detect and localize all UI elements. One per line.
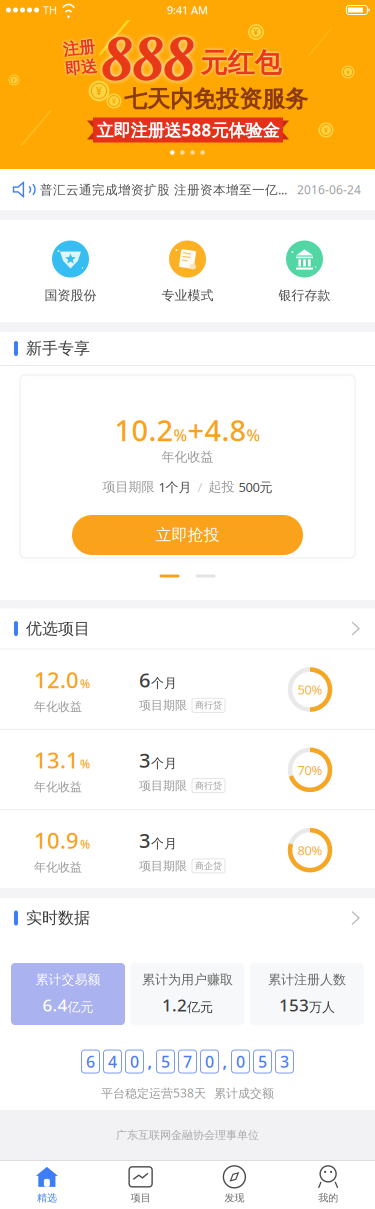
staticText: 亿元	[67, 999, 93, 1015]
staticText: 153	[279, 994, 309, 1016]
staticText: 3	[139, 827, 150, 854]
button[interactable]: 实时数据	[0, 898, 375, 938]
staticText: 个月	[151, 836, 177, 852]
staticText: 项目期限	[102, 479, 158, 495]
staticText: %	[80, 756, 90, 772]
button[interactable]: 专业模式	[129, 240, 246, 303]
staticText: ¥	[253, 27, 258, 37]
staticText: 万人	[309, 999, 335, 1015]
button[interactable]: 国资股份	[12, 240, 129, 303]
staticText: 5	[258, 1051, 267, 1072]
button[interactable]: 精选	[0, 1161, 94, 1209]
staticText: 13.1	[34, 745, 79, 775]
staticText: 0	[236, 1051, 245, 1072]
staticText: 新手专享	[26, 339, 90, 358]
button[interactable]: 普汇云通完成增资扩股 注册资本增至一亿...	[0, 169, 375, 210]
staticText: 立即注册送588元体验金	[96, 119, 279, 141]
staticText: 发现	[224, 1192, 244, 1204]
button[interactable]: 立即抢投	[72, 515, 303, 555]
staticText: 6	[139, 666, 150, 693]
staticText: 七天内免投资服务	[124, 85, 308, 113]
button[interactable]: 立即注册送588元体验金	[87, 116, 289, 143]
staticText: 12.0	[34, 665, 79, 694]
button[interactable]: 优选项目	[0, 608, 375, 648]
staticText: %	[80, 836, 90, 852]
staticText: 商行贷	[195, 700, 222, 711]
staticText: ¥	[96, 84, 102, 98]
staticText: 专业模式	[161, 287, 213, 303]
staticText: 项目期限	[139, 778, 187, 793]
staticText: 3	[280, 1051, 289, 1072]
staticText: 4	[108, 1051, 117, 1072]
staticText: 商行贷	[195, 780, 222, 791]
staticText: 0	[205, 1051, 214, 1072]
staticText: 累计注册人数	[268, 972, 346, 988]
staticText: 注册	[64, 38, 96, 58]
staticText: 50%	[297, 681, 322, 698]
staticText: 个月	[151, 675, 177, 691]
staticText: 500元	[238, 478, 272, 496]
button[interactable]: 我的	[281, 1161, 375, 1209]
button[interactable]: ¥	[0, 20, 375, 169]
staticText: 我的	[318, 1192, 338, 1204]
staticText: 立即抢投	[155, 525, 219, 545]
staticText: 亿元	[187, 999, 213, 1015]
staticText: 元红包	[200, 46, 281, 80]
staticText: 80%	[297, 841, 322, 859]
staticText: 2016-06-24	[297, 181, 361, 197]
staticText: ¥	[324, 125, 328, 135]
staticText: 7	[183, 1051, 192, 1072]
staticText: 6.4	[42, 994, 67, 1016]
staticText: 1个月	[158, 478, 191, 496]
staticText: ,	[147, 1051, 152, 1072]
staticText: 精选	[37, 1192, 57, 1204]
staticText: +4.8	[187, 411, 246, 449]
staticText: ¥	[112, 96, 116, 106]
staticText: 国资股份	[44, 287, 96, 303]
staticText: ¥	[346, 68, 349, 76]
staticText: 平台稳定运营538天 累计成交额	[101, 1085, 274, 1101]
button[interactable]: 13.1	[0, 730, 375, 809]
staticText: 5	[161, 1051, 170, 1072]
staticText: 广东互联网金融协会理事单位	[116, 1128, 259, 1142]
button[interactable]: 10.9	[0, 810, 375, 889]
staticText: 10.9	[34, 826, 79, 855]
staticText: 个月	[151, 755, 177, 771]
staticText: 累计交易额	[35, 972, 100, 988]
staticText: 1.2	[162, 994, 187, 1016]
staticText: %	[80, 676, 90, 691]
staticText: 优选项目	[26, 619, 90, 638]
staticText: 项目期限	[139, 859, 187, 873]
staticText: 9:41 AM	[167, 3, 208, 17]
staticText: 3	[139, 747, 150, 773]
button[interactable]: 项目	[94, 1161, 188, 1209]
staticText: 普汇云通完成增资扩股 注册资本增至一亿...	[40, 181, 287, 198]
staticText: 0	[130, 1051, 139, 1072]
staticText: 项目	[131, 1192, 151, 1204]
button[interactable]: 12.0	[0, 649, 375, 729]
staticText: ,	[222, 1051, 227, 1072]
staticText: 70%	[297, 761, 322, 778]
staticText: 银行存款	[278, 287, 330, 303]
staticText: 年化收益	[34, 699, 82, 714]
staticText: ¥	[12, 77, 15, 83]
staticText: 累计为用户赚取	[142, 972, 233, 988]
staticText: 商企贷	[195, 860, 222, 871]
staticText: %	[173, 424, 187, 446]
staticText: 888	[102, 23, 193, 95]
staticText: 年化收益	[34, 860, 82, 875]
staticText: %	[246, 424, 260, 446]
staticText: 年化收益	[161, 449, 213, 465]
staticText: 起投	[208, 479, 238, 495]
staticText: 年化收益	[34, 780, 82, 794]
staticText: 项目期限	[139, 698, 187, 713]
button[interactable]: 银行存款	[246, 240, 363, 303]
staticText: 6	[86, 1051, 95, 1072]
button[interactable]: 发现	[187, 1161, 281, 1209]
staticText: 10.2	[114, 411, 173, 449]
staticText: 实时数据	[26, 908, 90, 928]
staticText: /	[191, 478, 208, 496]
staticText: TH	[43, 3, 57, 17]
staticText: 即送	[64, 58, 96, 78]
